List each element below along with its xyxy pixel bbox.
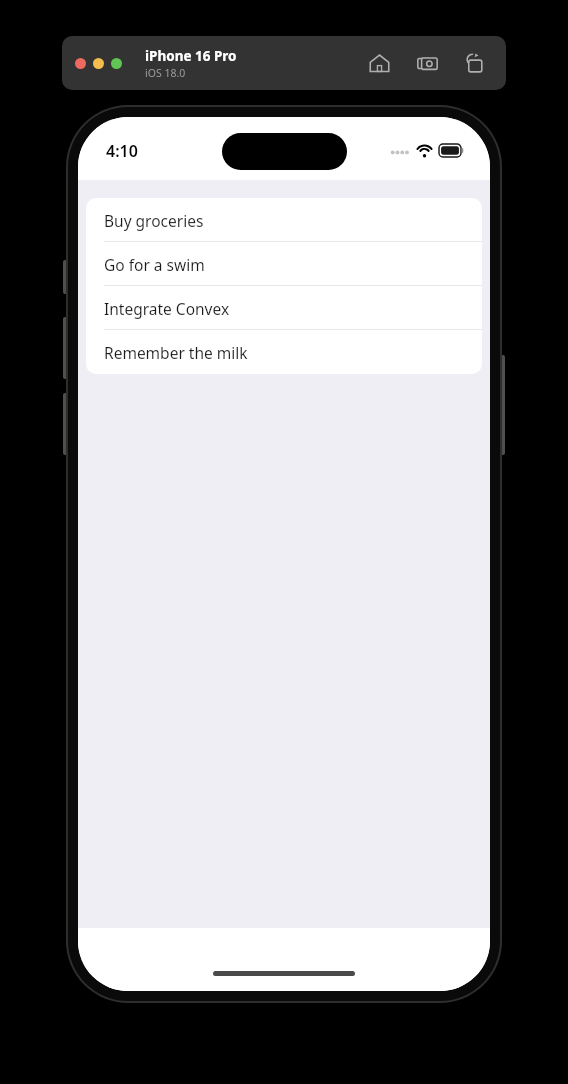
button[interactable]: Rotate xyxy=(462,50,488,76)
button[interactable]: Remember the milk xyxy=(86,330,482,374)
staticText: Go for a swim xyxy=(104,254,205,275)
staticText: Remember the milk xyxy=(104,342,248,363)
button[interactable]: Screenshot xyxy=(414,50,440,76)
staticText: Buy groceries xyxy=(104,210,204,231)
staticText: iPhone 16 Pro xyxy=(145,47,237,65)
staticText: 4:10 xyxy=(106,140,138,162)
button[interactable]: Maximize xyxy=(111,58,122,69)
staticText: iOS 18.0 xyxy=(145,66,186,80)
button[interactable]: Buy groceries xyxy=(86,198,482,242)
button[interactable]: Home xyxy=(366,50,392,76)
button[interactable]: Go for a swim xyxy=(86,242,482,286)
staticText: Integrate Convex xyxy=(104,298,230,319)
button[interactable]: Integrate Convex xyxy=(86,286,482,330)
button[interactable]: Minimize xyxy=(93,58,104,69)
button[interactable]: Close xyxy=(75,58,86,69)
